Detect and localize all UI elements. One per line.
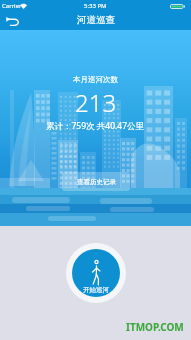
staticText: 本月巡河次数 xyxy=(73,75,118,84)
staticText: 213 xyxy=(75,86,117,119)
staticText: Carrier xyxy=(2,2,22,10)
button[interactable]: 开始巡河 xyxy=(66,243,126,303)
staticText: 开始巡河 xyxy=(83,286,109,294)
button[interactable]: 返回 xyxy=(2,12,24,30)
staticText: 5:33 PM xyxy=(84,2,107,10)
staticText: ITMOP.COM xyxy=(126,320,184,334)
staticText: 查看历史记录 xyxy=(77,178,116,186)
button[interactable]: 查看历史记录 xyxy=(62,172,130,191)
staticText: 累计：759次 共40.47公里 xyxy=(46,120,145,132)
staticText: 河道巡查 xyxy=(77,14,115,26)
